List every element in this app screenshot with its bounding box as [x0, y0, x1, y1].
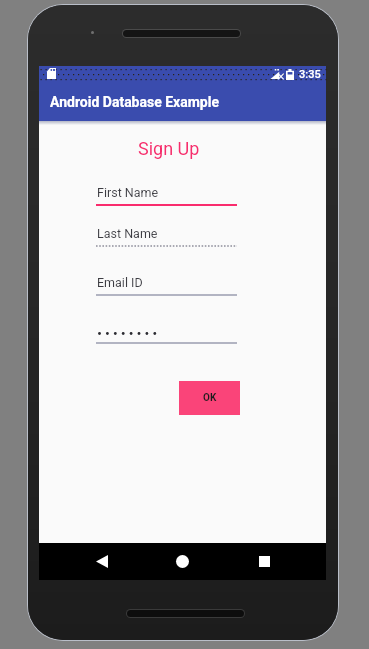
staticText: 3:35: [299, 68, 321, 81]
staticText: Last Name: [97, 226, 158, 241]
staticText: Sign Up: [138, 138, 200, 159]
staticText: OK: [203, 392, 217, 404]
staticText: Android Database Example: [50, 94, 219, 110]
button[interactable]: Home: [164, 543, 200, 579]
button[interactable]: First Name: [96, 183, 237, 207]
button[interactable]: Recent apps: [246, 543, 282, 579]
staticText: Email ID: [97, 275, 143, 290]
button[interactable]: OK: [179, 381, 240, 415]
button[interactable]: Email ID: [96, 273, 237, 297]
button[interactable]: [96, 321, 237, 345]
button[interactable]: Last Name: [96, 224, 237, 248]
button[interactable]: Back: [84, 543, 120, 579]
staticText: First Name: [97, 185, 159, 200]
